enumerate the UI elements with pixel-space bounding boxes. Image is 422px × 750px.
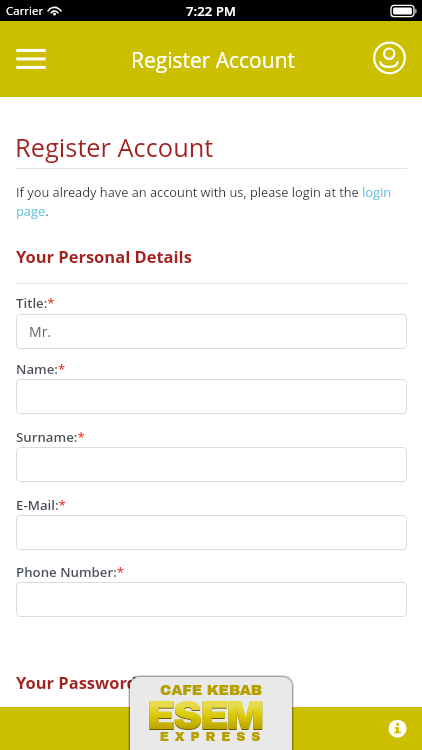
staticText: Name:* <box>16 360 66 378</box>
staticText: Surname:* <box>16 428 85 446</box>
button[interactable]: Open navigation menu <box>8 39 54 79</box>
staticText: Carrier <box>6 3 44 19</box>
staticText: Mr. <box>29 322 52 341</box>
staticText: Register Account <box>131 46 295 75</box>
staticText: ESEM <box>130 694 285 739</box>
staticText: Your Password <box>16 671 137 693</box>
button[interactable]: My account <box>367 36 412 81</box>
button[interactable]: Cafe Kebab Esem Express <box>130 677 292 750</box>
staticText: E-Mail:* <box>16 496 66 514</box>
button[interactable]: Information <box>379 711 416 748</box>
staticText: Your Personal Details <box>16 245 192 267</box>
button[interactable] <box>16 447 407 482</box>
staticText: EXPRESS <box>132 730 292 744</box>
button[interactable] <box>16 515 407 550</box>
staticText: Register Account <box>15 130 214 165</box>
staticText: CAFE KEBAB <box>130 682 292 698</box>
button[interactable] <box>16 379 407 414</box>
staticText: 7:22 PM <box>186 2 236 20</box>
button[interactable] <box>16 582 407 617</box>
staticText: Phone Number:* <box>16 563 125 581</box>
staticText: If you already have an account with us, … <box>16 183 407 220</box>
staticText: ESEM <box>130 693 285 738</box>
staticText: Title:* <box>16 294 55 312</box>
button[interactable]: Mr. <box>16 314 407 349</box>
